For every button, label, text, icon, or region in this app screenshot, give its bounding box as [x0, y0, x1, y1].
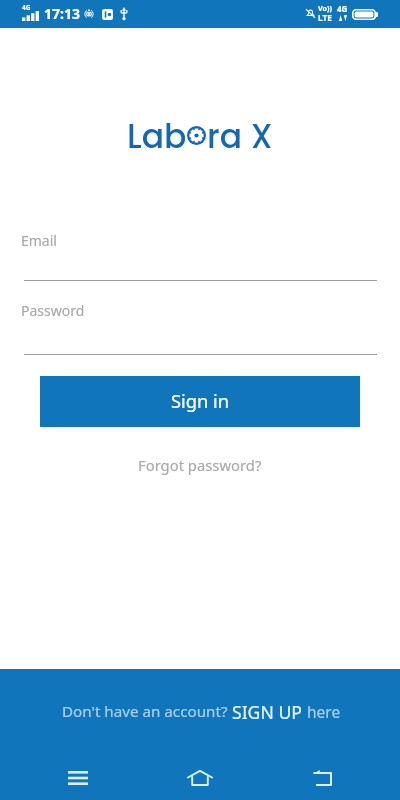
button[interactable]: Forgot password? — [128, 449, 272, 481]
button[interactable]: Home — [176, 754, 224, 800]
staticText: 4G — [22, 3, 31, 12]
button[interactable]: Menu — [54, 754, 102, 800]
staticText: LTE — [318, 12, 332, 23]
staticText: 17:13 — [44, 4, 80, 23]
staticText: Forgot password? — [138, 455, 262, 475]
staticText: Lab — [127, 113, 187, 159]
staticText: Email — [21, 231, 57, 250]
staticText: here — [307, 701, 341, 722]
button[interactable]: SIGN UP — [226, 695, 308, 729]
button[interactable]: Sign in — [40, 376, 360, 427]
staticText: SIGN UP — [232, 700, 302, 724]
staticText: Don't have an account? — [62, 701, 228, 722]
button[interactable]: Back — [298, 754, 346, 800]
staticText: 4G — [337, 3, 348, 14]
staticText: ra X — [207, 113, 273, 159]
staticText: Vo)) — [318, 3, 332, 13]
staticText: Sign in — [171, 388, 230, 413]
staticText: Password — [21, 301, 85, 320]
